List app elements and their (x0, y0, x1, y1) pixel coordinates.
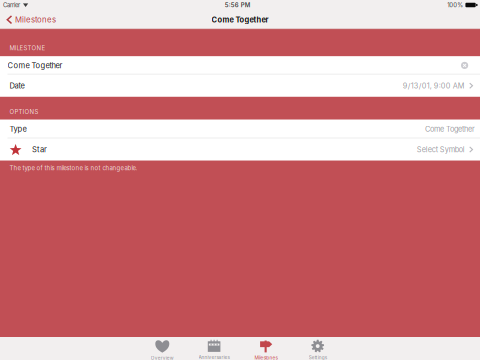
staticText: Star (32, 145, 47, 154)
staticText: Select Symbol (417, 145, 465, 154)
staticText: The type of this milestone is not change… (9, 164, 137, 172)
button[interactable]: Date (0, 75, 480, 97)
staticText: 9/13/01, 9:00 AM (403, 81, 465, 90)
staticText: Date (9, 81, 24, 90)
button[interactable]: Milestones (0, 10, 61, 29)
staticText: Come Together (7, 61, 62, 70)
staticText: Settings (309, 355, 327, 360)
button[interactable]: Settings (292, 337, 344, 360)
staticText: Carrier (3, 1, 20, 9)
staticText: Overview (151, 355, 174, 360)
staticText: Type (9, 124, 26, 134)
button[interactable]: Overview (136, 337, 188, 360)
staticText: 100% (447, 1, 463, 9)
staticText: Come Together (211, 15, 268, 24)
button[interactable]: Milestones (240, 337, 292, 360)
staticText: 5:56 PM (225, 1, 251, 9)
staticText: Milestones (15, 15, 56, 24)
staticText: Anniversaries (199, 355, 230, 360)
button[interactable]: Star (0, 138, 480, 160)
staticText: OPTIONS (9, 108, 38, 116)
staticText: Come Together (425, 125, 475, 133)
staticText: MILESTONE (9, 44, 45, 52)
button[interactable]: Anniversaries (188, 337, 240, 360)
staticText: Milestones (254, 355, 277, 360)
button[interactable]: Clear text (459, 59, 470, 72)
